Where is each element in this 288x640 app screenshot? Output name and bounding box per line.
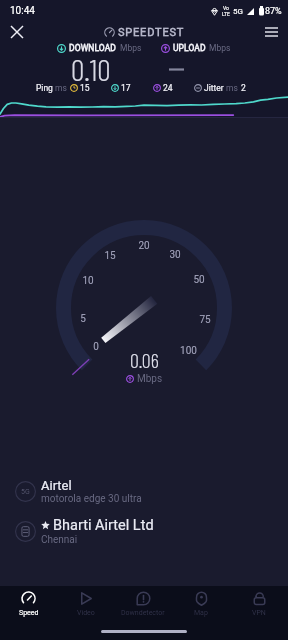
staticText: Ping	[36, 83, 53, 93]
staticText: 0.10	[71, 51, 111, 87]
staticText: Mbps	[209, 43, 231, 53]
staticText: 5	[80, 313, 86, 325]
staticText: Speed	[19, 609, 39, 617]
staticText: VPN	[252, 609, 266, 617]
staticText: Bharti Airtel Ltd	[53, 517, 154, 534]
staticText: 30	[169, 249, 181, 261]
staticText: DOWNLOAD	[69, 43, 117, 53]
staticText: 0.06	[130, 348, 159, 372]
staticText: LTE	[222, 11, 230, 17]
staticText: 24	[163, 83, 173, 93]
staticText: motorola edge 30 ultra	[41, 493, 142, 505]
staticText: 100	[180, 345, 197, 357]
staticText: 87%	[265, 6, 282, 17]
staticText: 5G	[21, 488, 30, 496]
staticText: SPEEDTEST	[118, 26, 185, 39]
staticText: 10:44	[10, 5, 35, 17]
staticText: Vo	[223, 5, 229, 11]
staticText: Mbps	[120, 43, 142, 53]
staticText: Jitter	[204, 83, 224, 93]
button[interactable]: VPN	[230, 591, 288, 617]
staticText: Video	[77, 609, 95, 617]
staticText: Downdetector	[121, 609, 165, 617]
button[interactable]: Map	[172, 591, 230, 617]
staticText: Mbps	[137, 373, 163, 385]
staticText: 0	[93, 341, 99, 353]
staticText: 75	[199, 314, 211, 326]
staticText: 50	[193, 274, 205, 286]
staticText: Map	[194, 609, 208, 617]
staticText: ms	[226, 83, 238, 93]
button[interactable]: Close	[0, 22, 34, 42]
button[interactable]: Menu	[254, 22, 288, 42]
button[interactable]: Bharti Airtel Ltd	[15, 517, 273, 546]
button[interactable]: Downdetector	[114, 591, 172, 617]
staticText: 17	[121, 83, 131, 93]
staticText: 15	[80, 83, 90, 93]
staticText: ms	[55, 83, 67, 93]
staticText: 5G	[233, 7, 243, 16]
staticText: 10	[82, 275, 94, 287]
button[interactable]: Speed	[0, 591, 57, 617]
staticText: 20	[138, 240, 150, 252]
staticText: Airtel	[41, 478, 72, 493]
button[interactable]: 5G	[15, 478, 273, 505]
button[interactable]: Video	[57, 591, 114, 617]
staticText: Chennai	[41, 534, 78, 546]
staticText: UPLOAD	[173, 43, 206, 53]
staticText: 2	[241, 83, 246, 93]
staticText: 15	[104, 250, 116, 262]
